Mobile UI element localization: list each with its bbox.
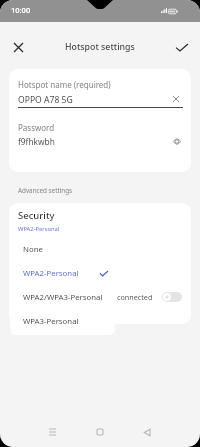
button[interactable]: WPA3-Personal: [10, 309, 115, 333]
button[interactable]: Show password: [171, 135, 183, 147]
staticText: Security: [18, 209, 55, 222]
button[interactable]: WPA2-Personal: [10, 261, 115, 285]
staticText: Turn off when no devices are connected: [18, 292, 160, 302]
button[interactable]: Recent apps: [41, 421, 63, 443]
button[interactable]: Turn off when no devices are connected: [9, 286, 191, 308]
staticText: Hotspot name (required): [18, 79, 111, 90]
button[interactable]: WPA2/WPA3-Personal: [10, 285, 115, 309]
staticText: 10:00: [11, 5, 31, 15]
button[interactable]: None: [10, 237, 115, 261]
button[interactable]: Back: [136, 421, 158, 443]
staticText: WPA2/WPA3-Personal: [23, 292, 108, 303]
staticText: WPA2-Personal: [18, 225, 60, 233]
button[interactable]: Confirm: [170, 35, 194, 59]
button[interactable]: Close: [6, 35, 30, 59]
staticText: f9fhkwbh: [18, 136, 55, 147]
button[interactable]: Clear text: [170, 93, 182, 105]
staticText: None: [23, 244, 108, 255]
staticText: Hotspot settings: [65, 41, 135, 53]
staticText: WPA2-Personal: [23, 268, 100, 279]
staticText: Password: [18, 122, 55, 133]
staticText: OPPO A78 5G: [18, 94, 73, 106]
staticText: Advanced settings: [18, 186, 73, 195]
staticText: WPA3-Personal: [23, 316, 108, 327]
button[interactable]: Home: [89, 421, 111, 443]
